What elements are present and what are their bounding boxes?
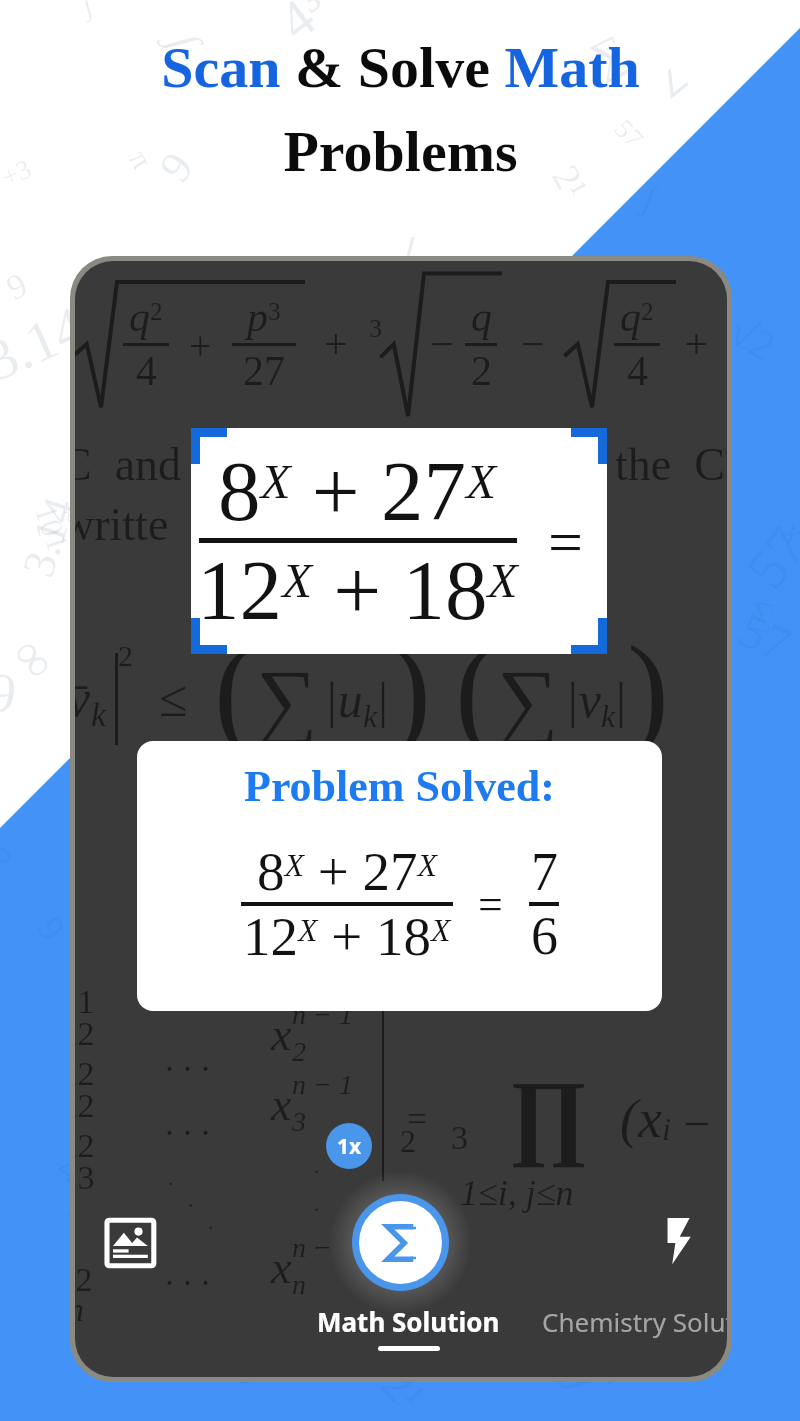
staticText: ∆ xyxy=(422,425,456,469)
staticText: 101 xyxy=(402,542,464,606)
staticText: 3.14 xyxy=(201,554,280,604)
staticText: ∫ xyxy=(639,179,661,218)
staticText: √2 xyxy=(311,1050,351,1091)
staticText: ,2 xyxy=(75,1127,95,1165)
staticText: sin xyxy=(86,1113,123,1151)
staticText: x xyxy=(271,1242,292,1293)
staticText: ∫ xyxy=(80,0,96,21)
staticText: 2 xyxy=(292,1036,306,1067)
staticText: k xyxy=(601,698,616,733)
staticText: = xyxy=(478,880,503,929)
staticText: 3.14 xyxy=(201,554,280,604)
staticText: (x xyxy=(620,1089,662,1149)
staticText: ∆ xyxy=(101,782,141,822)
staticText: ∑ xyxy=(398,453,456,504)
staticText: Problem Solved: xyxy=(244,762,555,811)
staticText: ,3 xyxy=(75,1159,95,1197)
staticText: sin xyxy=(86,1113,123,1151)
staticText: +3 xyxy=(0,153,36,192)
staticText: ≈ xyxy=(310,784,369,846)
staticText: |u xyxy=(324,672,363,727)
staticText: ,2 xyxy=(75,1015,95,1053)
staticText: n xyxy=(75,1291,84,1329)
staticText: 9 xyxy=(149,143,203,191)
staticText: 2¹ xyxy=(371,1358,436,1421)
staticText: 9 xyxy=(30,909,73,948)
staticText: 3 xyxy=(292,1106,306,1137)
staticText: 4³ xyxy=(267,0,340,52)
button[interactable]: Toggle flash xyxy=(649,1211,707,1269)
staticText: ∫ xyxy=(321,819,340,871)
button[interactable]: Chemistry Solution xyxy=(542,1304,727,1339)
staticText: 9 xyxy=(1,265,33,308)
staticText: 2¹ xyxy=(543,158,596,207)
button[interactable]: Open gallery xyxy=(101,1213,161,1273)
button[interactable]: Scan math problem xyxy=(359,1201,442,1284)
staticText: log xyxy=(387,311,440,362)
staticText: 2¹ xyxy=(382,1333,427,1390)
staticText: +3 xyxy=(0,153,36,192)
button[interactable]: Math Solution xyxy=(317,1304,500,1351)
staticText: log xyxy=(153,1170,215,1238)
staticText: v̄ xyxy=(75,670,91,728)
staticText: 2¹ xyxy=(382,1333,427,1390)
staticText: ≈ xyxy=(508,421,553,465)
staticText: 2 xyxy=(471,348,492,395)
staticText: 3.14 xyxy=(0,293,95,393)
button[interactable]: 1x xyxy=(326,1123,372,1169)
staticText: 4³ xyxy=(50,1144,101,1199)
staticText: ) xyxy=(627,621,669,761)
staticText: ∞ xyxy=(215,1342,266,1400)
staticText: x xyxy=(271,1009,292,1060)
staticText: ≠ xyxy=(242,678,288,744)
staticText: | xyxy=(378,672,389,727)
staticText: n − xyxy=(292,1232,332,1263)
staticText: 4³ xyxy=(183,547,216,579)
staticText: ∫ xyxy=(159,28,212,55)
staticText: 57 xyxy=(731,602,799,673)
staticText: = xyxy=(548,508,583,577)
staticText: ∫ xyxy=(80,0,96,21)
staticText: 1x xyxy=(337,1132,362,1161)
staticText: 9 xyxy=(0,660,21,726)
staticText: 4 xyxy=(136,348,157,395)
staticText: · xyxy=(313,1197,321,1221)
staticText: Ω xyxy=(604,934,664,999)
staticText: + xyxy=(674,321,709,368)
staticText: 8X + 27X xyxy=(257,841,437,902)
staticText: ÷ xyxy=(93,1201,145,1241)
staticText: q2 xyxy=(620,294,654,341)
staticText: 4 xyxy=(627,348,648,395)
staticText: log xyxy=(628,668,689,733)
staticText: . . . xyxy=(165,1039,210,1079)
staticText: 2¹ xyxy=(371,1358,436,1421)
staticText: x xyxy=(271,1079,292,1130)
staticText: ∠ xyxy=(392,227,432,273)
staticText: ∆ xyxy=(101,782,141,822)
staticText: 57 xyxy=(608,113,649,154)
staticText: ∫ xyxy=(159,28,212,55)
staticText: 3.14 xyxy=(13,491,85,583)
staticText: ∠ xyxy=(649,58,697,106)
staticText: ∆ xyxy=(422,425,456,469)
staticText: k xyxy=(91,696,107,734)
staticText: ∞ xyxy=(0,625,68,693)
staticText: ± xyxy=(601,526,643,583)
staticText: +3 xyxy=(501,309,543,350)
staticText: ≈ xyxy=(56,503,86,528)
staticText: log xyxy=(387,311,440,362)
staticText: ,2 xyxy=(75,1261,93,1299)
